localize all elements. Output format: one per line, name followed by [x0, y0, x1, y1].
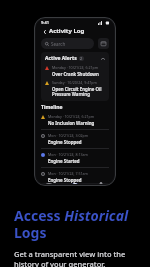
staticText: Get a transparent view into the history … [14, 249, 126, 267]
staticText: Engine Started [48, 158, 80, 164]
staticText: 2 [80, 56, 83, 61]
staticText: Active Alerts [45, 55, 77, 62]
staticText: Open Circuit Engine Oil Pressure Warning [52, 86, 105, 98]
button[interactable]: Sunday · 10/20/24, 9:47pm [45, 80, 105, 98]
staticText: No Inclusion Warning [48, 120, 95, 126]
button[interactable]: Account [88, 183, 114, 184]
staticText: Timeline [41, 104, 63, 111]
staticText: Engine Stopped [48, 139, 82, 145]
staticText: Activity Log [49, 27, 85, 35]
staticText: Engine Stopped [48, 177, 82, 183]
button[interactable]: Back [41, 28, 48, 35]
button[interactable]: Search [41, 38, 94, 49]
staticText: Monday · 10/21/24, 6:21pm [48, 114, 95, 119]
button[interactable]: Filter by date [98, 38, 109, 49]
staticText: Mon · 10/21/24, 8:13am [48, 152, 88, 157]
button[interactable]: Mon · 10/21/24, 3:02pm [41, 133, 109, 145]
staticText: Sunday · 10/20/24, 9:47pm [52, 80, 97, 85]
staticText: Access Historical Logs [14, 206, 138, 242]
staticText: Search [51, 41, 66, 47]
button[interactable]: Mon · 10/21/24, 8:13am [41, 152, 109, 164]
button[interactable]: Active Alerts [45, 55, 105, 62]
staticText: Monday · 10/21/24, 6:21pm [52, 65, 99, 70]
staticText: Mon · 10/21/24, 7:51am [48, 171, 88, 176]
button[interactable]: Home [36, 183, 62, 184]
button[interactable]: Monday · 10/21/24, 6:21pm [45, 65, 105, 77]
staticText: Mon · 10/21/24, 3:02pm [48, 133, 89, 138]
staticText: Over Crank Shutdown [52, 71, 99, 77]
button[interactable]: Activity [62, 183, 88, 184]
staticText: 9:41 [41, 20, 49, 25]
button[interactable]: Mon · 10/21/24, 7:51am [41, 171, 109, 183]
button[interactable]: Monday · 10/21/24, 6:21pm [41, 114, 109, 126]
